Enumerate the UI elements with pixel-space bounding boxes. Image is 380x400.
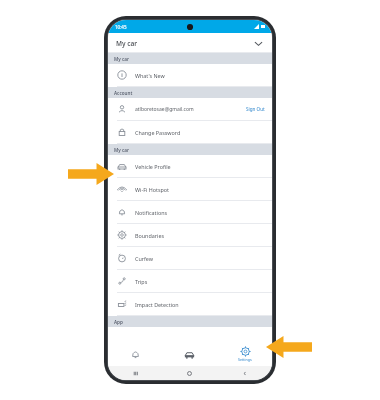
staticText: Change Password xyxy=(135,129,181,136)
button[interactable]: Settings xyxy=(217,342,272,366)
button[interactable]: Expand xyxy=(251,36,265,50)
button[interactable]: Vehicle Profile xyxy=(108,155,272,178)
staticText: What's New xyxy=(135,72,165,79)
staticText: My car xyxy=(114,56,129,62)
button[interactable]: Change Password xyxy=(108,121,272,144)
button[interactable]: Impact Detection xyxy=(108,293,272,316)
button[interactable]: Curfew xyxy=(108,247,272,270)
staticText: Impact Detection xyxy=(135,301,179,308)
staticText: Wi-Fi Hotspot xyxy=(135,186,170,193)
staticText: Sign Out xyxy=(246,106,265,112)
staticText: My car xyxy=(114,147,129,153)
button[interactable]: atlboretosae@gmail.com xyxy=(108,98,272,121)
staticText: Vehicle Profile xyxy=(135,163,171,170)
staticText: atlboretosae@gmail.com xyxy=(135,106,246,113)
staticText: Curfew xyxy=(135,255,153,262)
staticText: Boundaries xyxy=(135,232,165,239)
staticText: Account xyxy=(114,90,133,96)
staticText: App xyxy=(114,319,123,325)
button[interactable]: Notifications xyxy=(108,201,272,224)
staticText: Notifications xyxy=(135,209,168,216)
staticText: My car xyxy=(116,39,138,48)
staticText: Settings xyxy=(238,357,252,362)
button[interactable]: Trips xyxy=(108,270,272,293)
staticText: 10:45 xyxy=(115,24,127,30)
button[interactable]: Notifications xyxy=(108,342,162,366)
button[interactable]: What's New xyxy=(108,64,272,87)
button[interactable]: Wi-Fi Hotspot xyxy=(108,178,272,201)
button[interactable]: My Car xyxy=(162,342,217,366)
staticText: Trips xyxy=(135,278,148,285)
button[interactable]: Boundaries xyxy=(108,224,272,247)
